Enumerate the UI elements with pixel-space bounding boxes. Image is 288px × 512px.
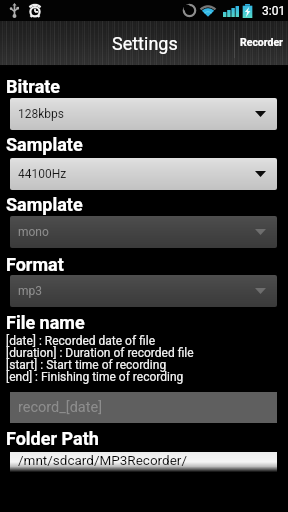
- staticText: Folder Path: [6, 428, 99, 449]
- staticText: mp3: [18, 284, 43, 298]
- staticText: Settings: [112, 33, 178, 54]
- staticText: Bitrate: [6, 76, 61, 97]
- staticText: Format: [6, 254, 64, 275]
- button[interactable]: Recorder: [235, 21, 288, 65]
- staticText: 44100Hz: [18, 167, 67, 181]
- staticText: [date] : Recorded date of file [duration…: [6, 334, 194, 384]
- button[interactable]: 128kbps: [10, 98, 277, 130]
- staticText: Recorder: [240, 36, 283, 48]
- staticText: Samplate: [6, 194, 83, 215]
- staticText: record_[date]: [18, 399, 103, 416]
- button[interactable]: /mnt/sdcard/MP3Recorder/: [10, 452, 277, 472]
- button[interactable]: 44100Hz: [10, 158, 277, 190]
- staticText: Samplate: [6, 134, 83, 155]
- staticText: File name: [6, 312, 85, 333]
- button[interactable]: mp3: [10, 275, 277, 307]
- staticText: 3:01: [262, 4, 286, 18]
- staticText: /mnt/sdcard/MP3Recorder/: [18, 452, 187, 468]
- staticText: mono: [18, 225, 49, 239]
- button[interactable]: record_[date]: [10, 392, 277, 423]
- staticText: 128kbps: [18, 107, 64, 121]
- button[interactable]: mono: [10, 216, 277, 248]
